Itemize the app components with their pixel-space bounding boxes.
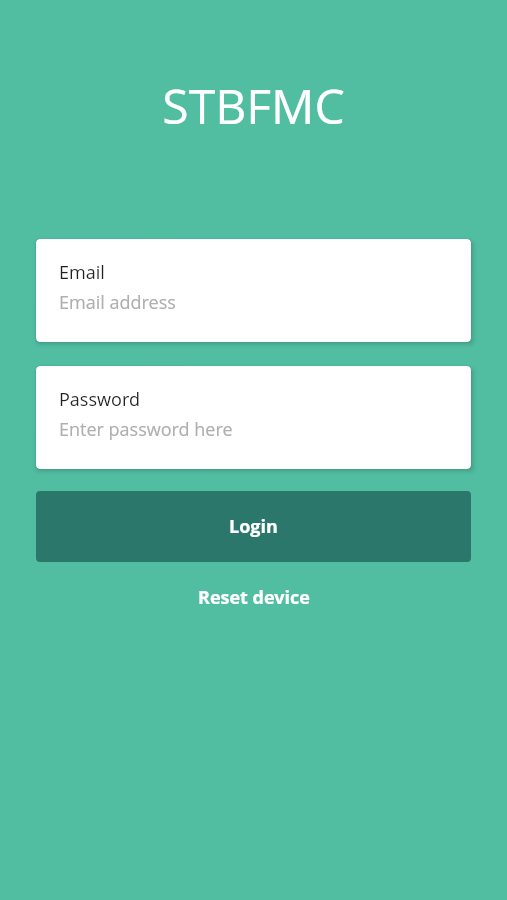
button[interactable]: Password field xyxy=(36,366,471,469)
staticText: Email address xyxy=(59,290,176,315)
button[interactable]: Email field xyxy=(36,239,471,342)
button[interactable]: Reset device xyxy=(182,577,326,617)
staticText: Login xyxy=(229,514,278,539)
staticText: Password xyxy=(59,387,140,412)
staticText: Reset device xyxy=(198,585,310,610)
staticText: STBFMC xyxy=(0,73,507,138)
staticText: Enter password here xyxy=(59,417,233,442)
button[interactable]: Login xyxy=(36,491,471,562)
staticText: Email xyxy=(59,260,105,285)
